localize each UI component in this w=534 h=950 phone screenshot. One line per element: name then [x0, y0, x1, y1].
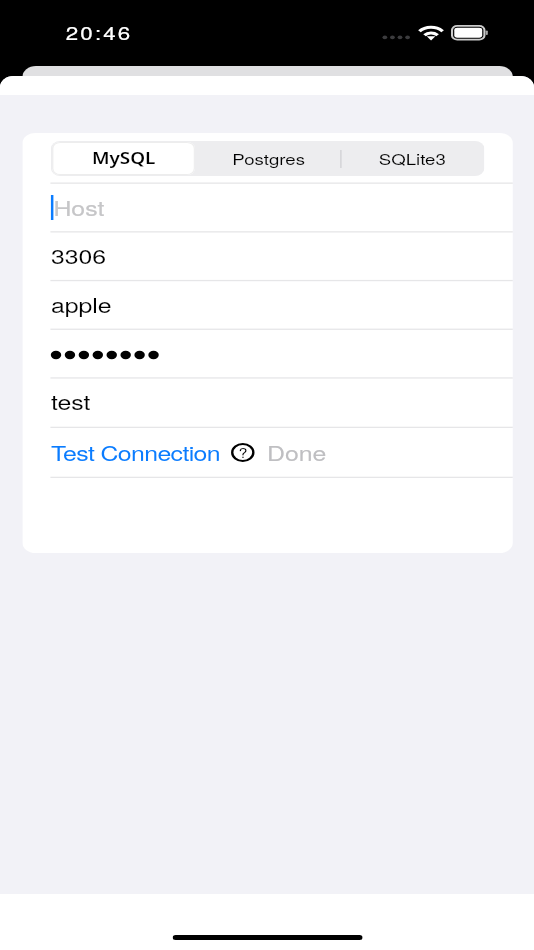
button[interactable]: Help [226, 439, 258, 465]
button[interactable]: Test Connection [51, 427, 221, 477]
button[interactable]: Host [51, 183, 513, 232]
button[interactable]: Done [267, 427, 327, 477]
button[interactable] [51, 329, 513, 378]
staticText: Postgres [232, 148, 305, 169]
staticText: Test Connection [51, 438, 221, 467]
staticText: 20:46 [66, 19, 133, 45]
staticText: 3306 [51, 241, 107, 270]
staticText: SQLite3 [379, 148, 446, 169]
staticText: ? [238, 443, 248, 462]
button[interactable]: test [51, 377, 513, 426]
button[interactable]: Postgres [196, 141, 340, 176]
staticText: MySQL [92, 148, 156, 169]
button[interactable]: apple [51, 280, 513, 329]
staticText: Done [267, 438, 327, 467]
button[interactable]: SQLite3 [340, 141, 484, 176]
button[interactable]: MySQL [52, 142, 195, 175]
staticText: test [51, 387, 91, 416]
staticText: Host [53, 193, 106, 222]
staticText: apple [51, 290, 112, 319]
button[interactable]: 3306 [51, 231, 513, 280]
